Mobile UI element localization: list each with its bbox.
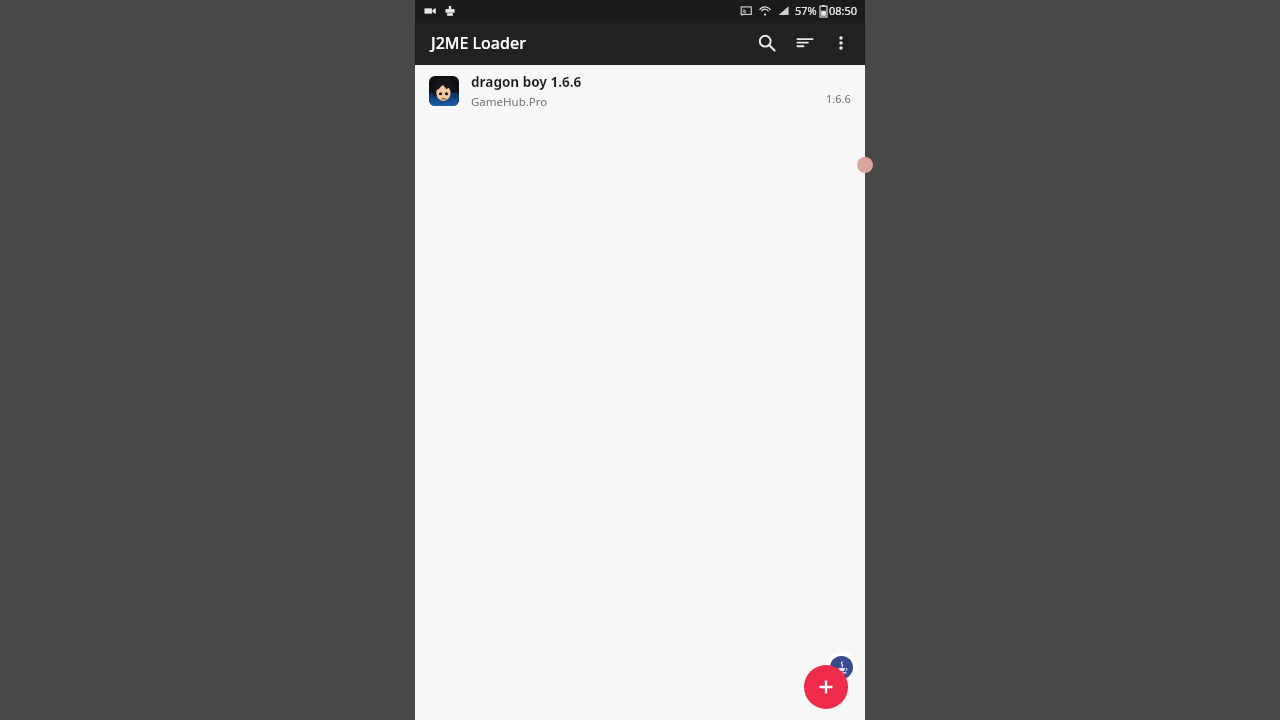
button[interactable]: Add xyxy=(804,665,848,709)
staticText: GameHub.Pro xyxy=(471,94,548,110)
button[interactable]: Add Java application xyxy=(826,652,857,683)
button[interactable]: dragon boy 1.6.6 xyxy=(415,65,865,117)
staticText: 08:50 xyxy=(829,3,858,18)
staticText: 1.6.6 xyxy=(826,91,851,106)
staticText: dragon boy 1.6.6 xyxy=(471,73,582,91)
button[interactable]: Search xyxy=(747,23,787,63)
button[interactable]: More options xyxy=(823,25,859,61)
staticText: J2ME Loader xyxy=(431,32,526,54)
button[interactable]: Sort xyxy=(787,25,823,61)
staticText: 57% xyxy=(795,3,817,18)
